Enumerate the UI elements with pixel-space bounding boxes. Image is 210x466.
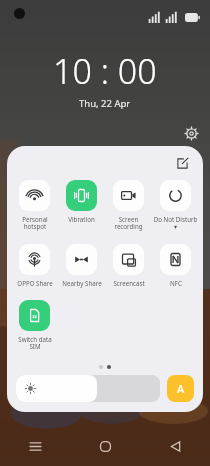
button[interactable]: Edit tiles — [173, 154, 191, 172]
button[interactable]: Screencast — [105, 242, 152, 289]
button[interactable]: Do Not Disturb ▾ — [152, 178, 199, 233]
staticText: Personal hotspot — [22, 215, 48, 231]
button[interactable]: Settings — [180, 122, 202, 144]
button[interactable]: NFC — [152, 242, 199, 289]
button[interactable]: Auto brightness — [167, 375, 194, 402]
button[interactable]: Home — [70, 426, 140, 466]
button[interactable]: Switch data SIM — [11, 298, 58, 353]
staticText: NFC — [170, 279, 182, 287]
button[interactable]: Personal hotspot — [11, 178, 58, 233]
button[interactable]: Recents — [0, 426, 70, 466]
staticText: Screen recording — [114, 215, 143, 231]
button[interactable]: Vibration — [58, 178, 105, 225]
staticText: Thu, 22 Apr — [79, 97, 131, 110]
staticText: 10 : 00 — [53, 48, 157, 94]
button[interactable]: Screen recording — [105, 178, 152, 233]
staticText: Vibration — [68, 215, 95, 223]
staticText: Screencast — [113, 279, 145, 287]
button[interactable]: Back — [140, 426, 210, 466]
staticText: Nearby Share — [62, 279, 102, 287]
button[interactable]: Brightness — [16, 375, 160, 402]
staticText: Switch data SIM — [18, 335, 52, 351]
button[interactable]: OPPO Share — [11, 242, 58, 289]
staticText: OPPO Share — [17, 279, 53, 287]
staticText: Do Not Disturb ▾ — [152, 215, 199, 231]
button[interactable]: Nearby Share — [58, 242, 105, 289]
staticText: A — [177, 381, 185, 396]
